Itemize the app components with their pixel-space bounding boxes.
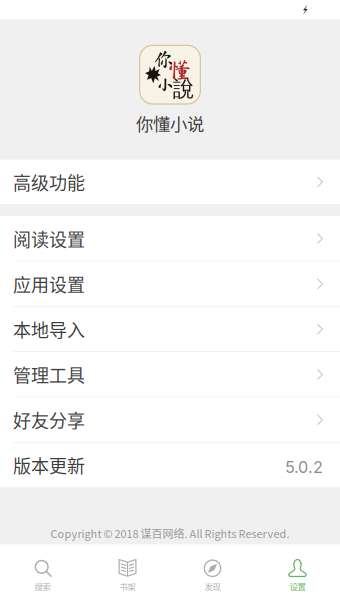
staticText: 搜索 [34,580,50,592]
staticText: 发现 [204,580,220,592]
staticText: 版本更新 [13,452,85,478]
staticText: 5.0.2 [285,457,323,477]
staticText: 你懂小说 [136,111,204,136]
staticText: 设置 [289,580,305,592]
staticText: Copyright © 2018 谋百网络. All Rights Reserv… [50,525,289,541]
button[interactable]: 管理工具 [0,352,340,397]
button[interactable]: 阅读设置 [0,216,340,261]
staticText: 好友分享 [13,407,85,433]
button[interactable]: 好友分享 [0,397,340,442]
button[interactable]: 本地导入 [0,307,340,351]
staticText: 书架 [119,580,135,592]
button[interactable]: 书架 [85,544,170,604]
button[interactable]: 设置 [255,544,340,604]
staticText: 懂 [168,58,190,80]
staticText: 高级功能 [13,169,85,195]
staticText: 你 [153,49,173,69]
staticText: 管理工具 [13,361,85,387]
button[interactable]: 版本更新 [0,443,340,487]
staticText: 应用设置 [13,271,85,297]
staticText: 說 [173,76,194,103]
staticText: 阅读设置 [13,225,85,252]
button[interactable]: 发现 [170,544,255,604]
button[interactable]: 搜索 [0,544,85,604]
staticText: 小 [156,75,173,92]
button[interactable]: 应用设置 [0,262,340,306]
staticText: 本地导入 [13,316,85,342]
button[interactable]: 高级功能 [0,160,340,204]
